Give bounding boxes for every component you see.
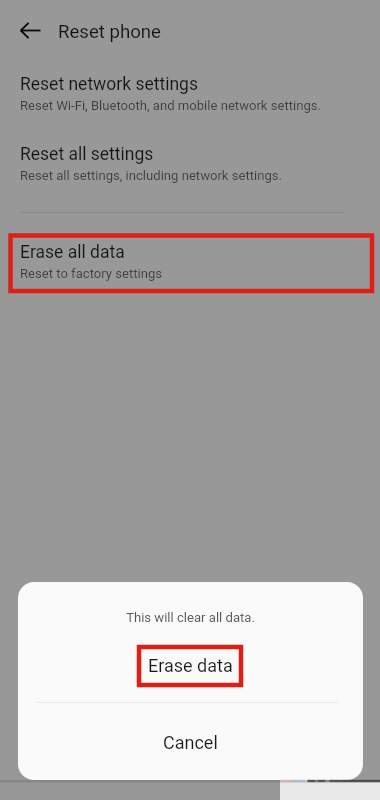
button[interactable]: Reset network settings <box>0 72 380 117</box>
button[interactable]: Cancel <box>18 727 363 757</box>
staticText: This will clear all data. <box>18 610 363 625</box>
staticText: Reset to factory settings <box>20 266 163 281</box>
staticText: Reset Wi-Fi, Bluetooth, and mobile netwo… <box>20 98 322 113</box>
staticText: Reset phone <box>58 21 161 43</box>
staticText: Reset all settings <box>20 144 154 165</box>
button[interactable]: Back <box>9 9 52 52</box>
staticText: Erase data <box>148 655 233 676</box>
staticText: Erase all data <box>20 242 125 263</box>
staticText: Reset network settings <box>20 74 198 95</box>
staticText: Reset all settings, including network se… <box>20 168 283 183</box>
button[interactable]: Erase all data <box>0 240 380 285</box>
staticText: Cancel <box>163 732 218 753</box>
button[interactable]: Reset all settings <box>0 142 380 187</box>
button[interactable]: Erase data <box>18 650 363 680</box>
